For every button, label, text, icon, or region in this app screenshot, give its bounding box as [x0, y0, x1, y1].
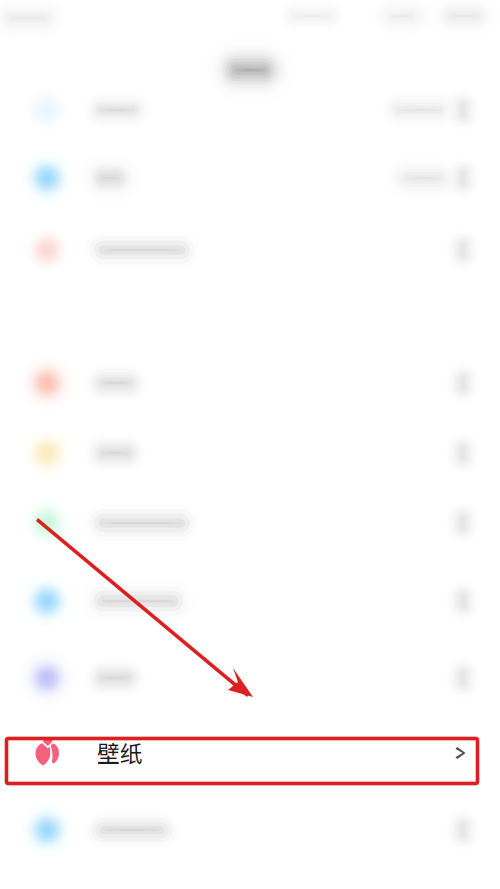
button[interactable]: 壁纸 — [0, 736, 494, 786]
staticText: 壁纸 — [97, 736, 143, 768]
